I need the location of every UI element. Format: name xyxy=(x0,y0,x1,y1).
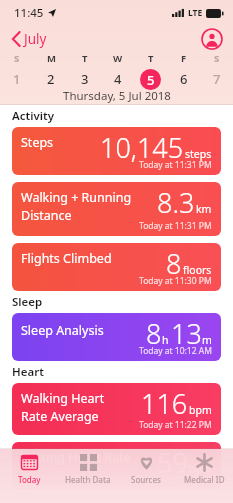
staticText: Sleep Analysis xyxy=(21,322,104,339)
staticText: bpm xyxy=(189,462,212,476)
staticText: 2 xyxy=(47,70,55,88)
button[interactable]: Flights Climbed xyxy=(12,243,221,291)
staticText: LTE xyxy=(188,7,203,19)
staticText: Walking Heart xyxy=(21,390,105,407)
button[interactable]: 3 xyxy=(68,66,101,92)
staticText: S xyxy=(214,52,220,65)
staticText: floors xyxy=(183,263,212,277)
staticText: m xyxy=(202,333,212,347)
staticText: Activity xyxy=(12,108,54,124)
staticText: 8 xyxy=(166,245,182,282)
button[interactable]: 5 xyxy=(134,66,167,92)
staticText: Resting Heart Rate xyxy=(21,449,131,466)
staticText: 8 xyxy=(146,315,162,352)
staticText: Today at 11:30 PM xyxy=(139,275,212,287)
button[interactable]: 4 xyxy=(101,66,134,92)
staticText: 8.3 xyxy=(157,184,195,221)
button[interactable]: 7 xyxy=(200,66,233,92)
button[interactable]: 6 xyxy=(167,66,200,92)
staticText: M xyxy=(47,52,56,65)
staticText: S xyxy=(14,52,20,65)
staticText: 13 xyxy=(171,315,202,352)
staticText: Rate Average xyxy=(21,408,99,425)
staticText: T xyxy=(82,52,88,65)
staticText: Today at 11:22 PM xyxy=(139,419,212,431)
staticText: July xyxy=(24,30,47,48)
button[interactable]: 1 xyxy=(0,66,34,92)
staticText: 5 xyxy=(147,71,155,89)
button[interactable]: 2 xyxy=(34,66,68,92)
staticText: F xyxy=(181,52,187,65)
button[interactable]: Profile xyxy=(201,28,223,50)
button[interactable]: Walking Heart xyxy=(12,383,221,435)
staticText: 59 xyxy=(157,444,188,481)
staticText: 6 xyxy=(180,70,188,88)
button[interactable]: Today xyxy=(0,449,59,503)
staticText: 3 xyxy=(81,70,89,88)
staticText: Today at 10:12 AM xyxy=(139,345,212,357)
staticText: h xyxy=(162,333,169,347)
staticText: Steps xyxy=(21,134,54,151)
staticText: Flights Climbed xyxy=(21,250,112,267)
staticText: 7 xyxy=(213,70,221,88)
staticText: 10,145 xyxy=(100,129,184,166)
staticText: Heart xyxy=(12,364,44,380)
staticText: Today xyxy=(18,474,41,485)
staticText: T xyxy=(148,52,154,65)
staticText: Distance xyxy=(21,207,72,224)
staticText: Today at 11:31 PM xyxy=(139,220,212,232)
staticText: Health Data xyxy=(65,474,111,485)
staticText: Walking + Running xyxy=(21,189,132,206)
staticText: Thursday, 5 Jul 2018 xyxy=(63,88,171,104)
button[interactable]: July xyxy=(8,28,51,50)
button[interactable]: Sleep Analysis xyxy=(12,313,221,361)
staticText: Sleep xyxy=(12,294,43,310)
staticText: 1 xyxy=(13,70,21,88)
button[interactable]: Medical ID xyxy=(175,449,233,503)
button[interactable]: Resting Heart Rate xyxy=(12,442,221,490)
staticText: 116 xyxy=(141,385,188,422)
staticText: steps xyxy=(185,147,212,161)
button[interactable]: Health Data xyxy=(59,449,117,503)
staticText: Medical ID xyxy=(184,474,225,485)
staticText: Sources xyxy=(131,474,161,485)
staticText: 4 xyxy=(114,70,122,88)
staticText: bpm xyxy=(189,403,212,417)
staticText: km xyxy=(196,202,212,216)
staticText: W xyxy=(113,52,123,65)
staticText: 11:45 xyxy=(14,5,44,21)
staticText: Today at 11:31 PM xyxy=(139,159,212,171)
button[interactable]: Steps xyxy=(12,127,221,175)
button[interactable]: Walking + Running xyxy=(12,182,221,236)
staticText: Today at 11:20 PM xyxy=(139,474,212,486)
button[interactable]: Sources xyxy=(117,449,175,503)
